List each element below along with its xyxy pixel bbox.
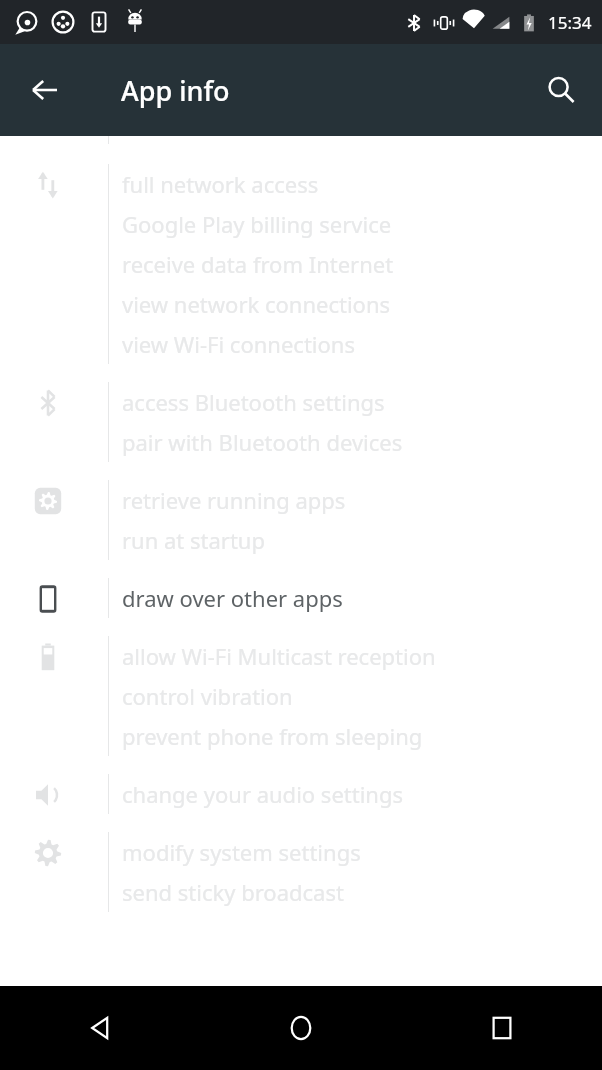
button[interactable]: retrieve running apps <box>0 480 602 560</box>
button[interactable]: Search <box>530 59 592 121</box>
staticText: change your audio settings <box>122 779 404 809</box>
button[interactable]: full network access <box>0 164 602 364</box>
staticText: view network connections <box>122 289 391 319</box>
staticText: draw over other apps <box>122 583 343 613</box>
staticText: 15:34 <box>548 11 592 34</box>
staticText: run at startup <box>122 525 265 555</box>
button[interactable]: change your audio settings <box>0 774 602 814</box>
staticText: modify system settings <box>122 837 361 867</box>
staticText: Google Play billing service <box>122 209 392 239</box>
staticText: control vibration <box>122 681 293 711</box>
staticText: full network access <box>122 169 319 199</box>
staticText: prevent phone from sleeping <box>122 721 423 751</box>
staticText: receive data from Internet <box>122 249 394 279</box>
staticText: view Wi-Fi connections <box>122 329 355 359</box>
button[interactable]: access Bluetooth settings <box>0 382 602 462</box>
button[interactable]: Recent apps <box>401 986 602 1070</box>
staticText: retrieve running apps <box>122 485 346 515</box>
button[interactable]: Back <box>14 59 76 121</box>
staticText: pair with Bluetooth devices <box>122 427 403 457</box>
staticText: allow Wi-Fi Multicast reception <box>122 641 436 671</box>
button[interactable]: Home <box>200 986 401 1070</box>
staticText: App info <box>121 72 230 109</box>
button[interactable]: modify system settings <box>0 832 602 912</box>
button[interactable]: Back <box>0 986 200 1070</box>
button[interactable]: draw over other apps <box>0 578 602 618</box>
button[interactable]: allow Wi-Fi Multicast reception <box>0 636 602 756</box>
staticText: access Bluetooth settings <box>122 387 385 417</box>
staticText: send sticky broadcast <box>122 877 344 907</box>
